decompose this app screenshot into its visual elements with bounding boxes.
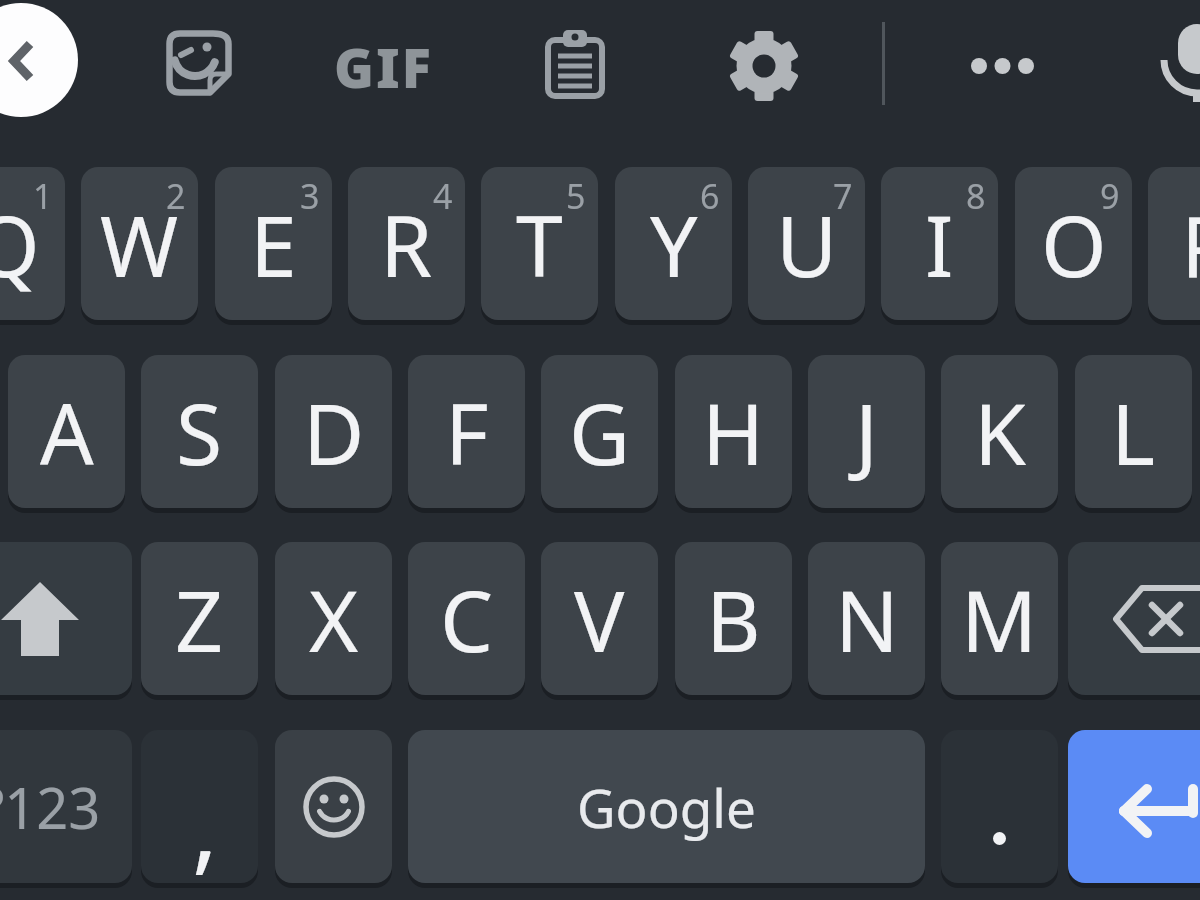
button[interactable]: J — [808, 355, 925, 508]
button[interactable]: X — [275, 542, 392, 695]
staticText: R — [380, 187, 433, 301]
staticText: J — [855, 375, 878, 489]
staticText: A — [40, 375, 94, 489]
staticText: E — [250, 187, 297, 301]
button[interactable]: U — [748, 167, 865, 320]
button[interactable]: R — [348, 167, 465, 320]
button[interactable] — [0, 542, 132, 695]
button[interactable]: H — [675, 355, 792, 508]
staticText: ?123 — [0, 769, 101, 845]
button[interactable]: E — [215, 167, 332, 320]
staticText: G — [569, 375, 631, 489]
button[interactable]: P — [1148, 167, 1200, 320]
button[interactable]: I — [881, 167, 998, 320]
button[interactable] — [166, 30, 236, 100]
button[interactable]: D — [275, 355, 392, 508]
button[interactable]: , — [141, 730, 258, 883]
staticText: T — [516, 187, 563, 301]
button[interactable] — [963, 50, 1042, 82]
staticText: P — [1181, 187, 1200, 301]
staticText: N — [835, 562, 899, 676]
button[interactable] — [941, 730, 1058, 883]
staticText: V — [574, 562, 625, 676]
staticText: 6 — [700, 173, 720, 219]
button[interactable]: L — [1075, 355, 1192, 508]
button[interactable] — [1160, 18, 1200, 108]
button[interactable]: V — [541, 542, 658, 695]
staticText: 5 — [566, 173, 586, 219]
button[interactable]: G — [541, 355, 658, 508]
button[interactable]: O — [1015, 167, 1132, 320]
button[interactable]: Y — [615, 167, 732, 320]
button[interactable] — [0, 3, 78, 117]
button[interactable]: W — [81, 167, 198, 320]
staticText: Z — [175, 562, 224, 676]
button[interactable]: Q — [0, 167, 65, 320]
button[interactable] — [275, 730, 392, 883]
button[interactable]: F — [408, 355, 525, 508]
button[interactable]: GIF — [333, 30, 433, 92]
staticText: H — [702, 375, 765, 489]
button[interactable] — [1068, 542, 1200, 695]
staticText: I — [925, 187, 954, 301]
staticText: 2 — [166, 173, 186, 219]
staticText: 9 — [1100, 173, 1120, 219]
staticText: GIF — [334, 30, 433, 92]
button[interactable] — [543, 28, 607, 98]
staticText: 3 — [300, 173, 320, 219]
staticText: 1 — [33, 173, 53, 219]
button[interactable]: C — [408, 542, 525, 695]
staticText: Q — [0, 187, 40, 301]
staticText: 4 — [433, 173, 453, 219]
staticText: X — [309, 562, 359, 676]
button[interactable]: B — [675, 542, 792, 695]
button[interactable]: S — [141, 355, 258, 508]
staticText: F — [445, 375, 489, 489]
staticText: C — [440, 562, 494, 676]
staticText: W — [100, 187, 179, 301]
button[interactable]: ?123 — [0, 730, 132, 883]
button[interactable] — [1068, 730, 1200, 883]
button[interactable]: M — [941, 542, 1058, 695]
staticText: 7 — [833, 173, 853, 219]
staticText: Google — [577, 771, 756, 843]
staticText: K — [974, 375, 1026, 489]
staticText: U — [776, 187, 838, 301]
button[interactable]: T — [481, 167, 598, 320]
staticText: Y — [650, 187, 698, 301]
staticText: O — [1041, 187, 1107, 301]
staticText: 8 — [966, 173, 986, 219]
staticText: M — [961, 562, 1038, 676]
button[interactable]: N — [808, 542, 925, 695]
button[interactable]: A — [8, 355, 125, 508]
button[interactable]: Google — [408, 730, 925, 883]
button[interactable]: Z — [141, 542, 258, 695]
staticText: , — [192, 759, 218, 890]
staticText: L — [1111, 375, 1156, 489]
staticText: B — [706, 562, 761, 676]
button[interactable]: K — [941, 355, 1058, 508]
staticText: S — [176, 375, 223, 489]
button[interactable] — [729, 31, 799, 101]
staticText: D — [303, 375, 365, 489]
